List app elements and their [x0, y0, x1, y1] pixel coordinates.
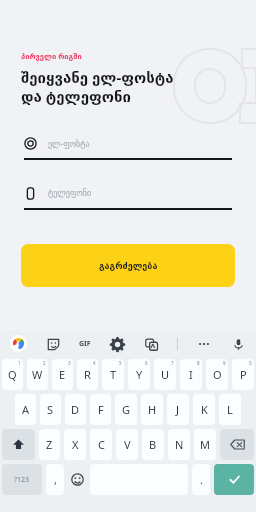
button[interactable]: G — [115, 394, 137, 425]
staticText: 9 — [223, 360, 226, 366]
button[interactable]: B — [142, 429, 164, 460]
button[interactable]: P — [232, 359, 254, 390]
staticText: Y — [136, 367, 143, 382]
staticText: Z — [46, 437, 53, 452]
button[interactable]: X — [64, 429, 86, 460]
staticText: U — [161, 367, 170, 382]
staticText: D — [71, 402, 80, 417]
staticText: N — [175, 437, 184, 452]
button[interactable]: Translate — [143, 336, 159, 352]
button[interactable]: ?123 — [2, 464, 42, 495]
button[interactable]: V — [116, 429, 138, 460]
staticText: , — [54, 472, 57, 487]
staticText: G — [122, 402, 131, 417]
staticText: 7 — [171, 360, 174, 366]
button[interactable]: Stickers — [45, 336, 61, 352]
staticText: E — [59, 367, 66, 382]
staticText: 6 — [145, 360, 148, 366]
button[interactable]: Settings — [109, 336, 125, 352]
button[interactable]: R — [77, 359, 98, 390]
button[interactable]: E — [52, 359, 73, 390]
staticText: M — [200, 437, 210, 452]
staticText: 1 — [18, 360, 21, 366]
staticText: P — [240, 367, 247, 382]
button[interactable]: J — [167, 394, 189, 425]
staticText: S — [47, 402, 54, 417]
button[interactable]: M — [194, 429, 216, 460]
other: Phone — [24, 187, 37, 200]
button[interactable]: Shift — [2, 429, 35, 460]
button[interactable]: Email — [24, 137, 232, 160]
button[interactable]: S — [40, 394, 61, 425]
staticText: GIF — [79, 339, 91, 349]
button[interactable]: C — [90, 429, 112, 460]
staticText: პირველი რიგში — [21, 51, 82, 61]
staticText: B — [149, 437, 157, 452]
staticText: ტელეფონი — [48, 189, 92, 198]
staticText: O — [213, 367, 222, 382]
button[interactable]: . — [192, 464, 210, 495]
staticText: C — [98, 437, 105, 452]
staticText: 2 — [43, 360, 46, 366]
button[interactable]: Backspace — [220, 429, 254, 460]
button[interactable]: I — [180, 359, 202, 390]
staticText: X — [72, 437, 79, 452]
staticText: 0 — [249, 360, 252, 366]
staticText: J — [176, 402, 180, 417]
button[interactable]: More — [196, 336, 212, 352]
staticText: T — [110, 367, 117, 382]
staticText: Q — [8, 367, 17, 382]
button[interactable]: W — [27, 359, 48, 390]
staticText: შეიყვანე ელ-ფოსტა და ტელეფონი — [21, 67, 174, 107]
other: Email — [24, 137, 37, 150]
button[interactable]: Z — [39, 429, 60, 460]
button[interactable]: Emoji — [66, 462, 88, 497]
staticText: I — [189, 367, 193, 382]
staticText: ?123 — [14, 475, 30, 485]
button[interactable]: H — [141, 394, 163, 425]
staticText: 3 — [68, 360, 71, 366]
staticText: V — [124, 437, 131, 452]
staticText: . — [200, 472, 203, 487]
button[interactable]: T — [102, 359, 124, 390]
button[interactable]: O — [206, 359, 228, 390]
staticText: W — [32, 367, 43, 382]
button[interactable]: D — [65, 394, 86, 425]
button[interactable]: Q — [2, 359, 23, 390]
button[interactable]: , — [46, 464, 64, 495]
staticText: 4 — [93, 360, 96, 366]
button[interactable]: N — [168, 429, 190, 460]
staticText: H — [148, 402, 157, 417]
staticText: ელ-ფოსტა — [48, 138, 90, 149]
button[interactable]: გაგრძელება — [21, 244, 235, 287]
button[interactable]: GIF — [79, 339, 91, 349]
staticText: K — [201, 402, 208, 417]
button[interactable]: U — [154, 359, 176, 390]
staticText: 5 — [119, 360, 122, 366]
staticText: L — [227, 402, 233, 417]
button[interactable]: A — [15, 394, 36, 425]
button[interactable]: L — [219, 394, 241, 425]
staticText: 8 — [197, 360, 200, 366]
button[interactable]: Voice input — [230, 336, 246, 352]
button[interactable]: Phone — [24, 187, 232, 210]
staticText: გაგრძელება — [99, 261, 158, 271]
staticText: R — [84, 367, 91, 382]
staticText: F — [98, 402, 104, 417]
button[interactable]: Enter — [214, 464, 254, 495]
button[interactable]: Google — [10, 335, 27, 352]
staticText: A — [22, 402, 30, 417]
button[interactable]: K — [193, 394, 215, 425]
button[interactable]: F — [90, 394, 111, 425]
button[interactable]: Y — [128, 359, 150, 390]
